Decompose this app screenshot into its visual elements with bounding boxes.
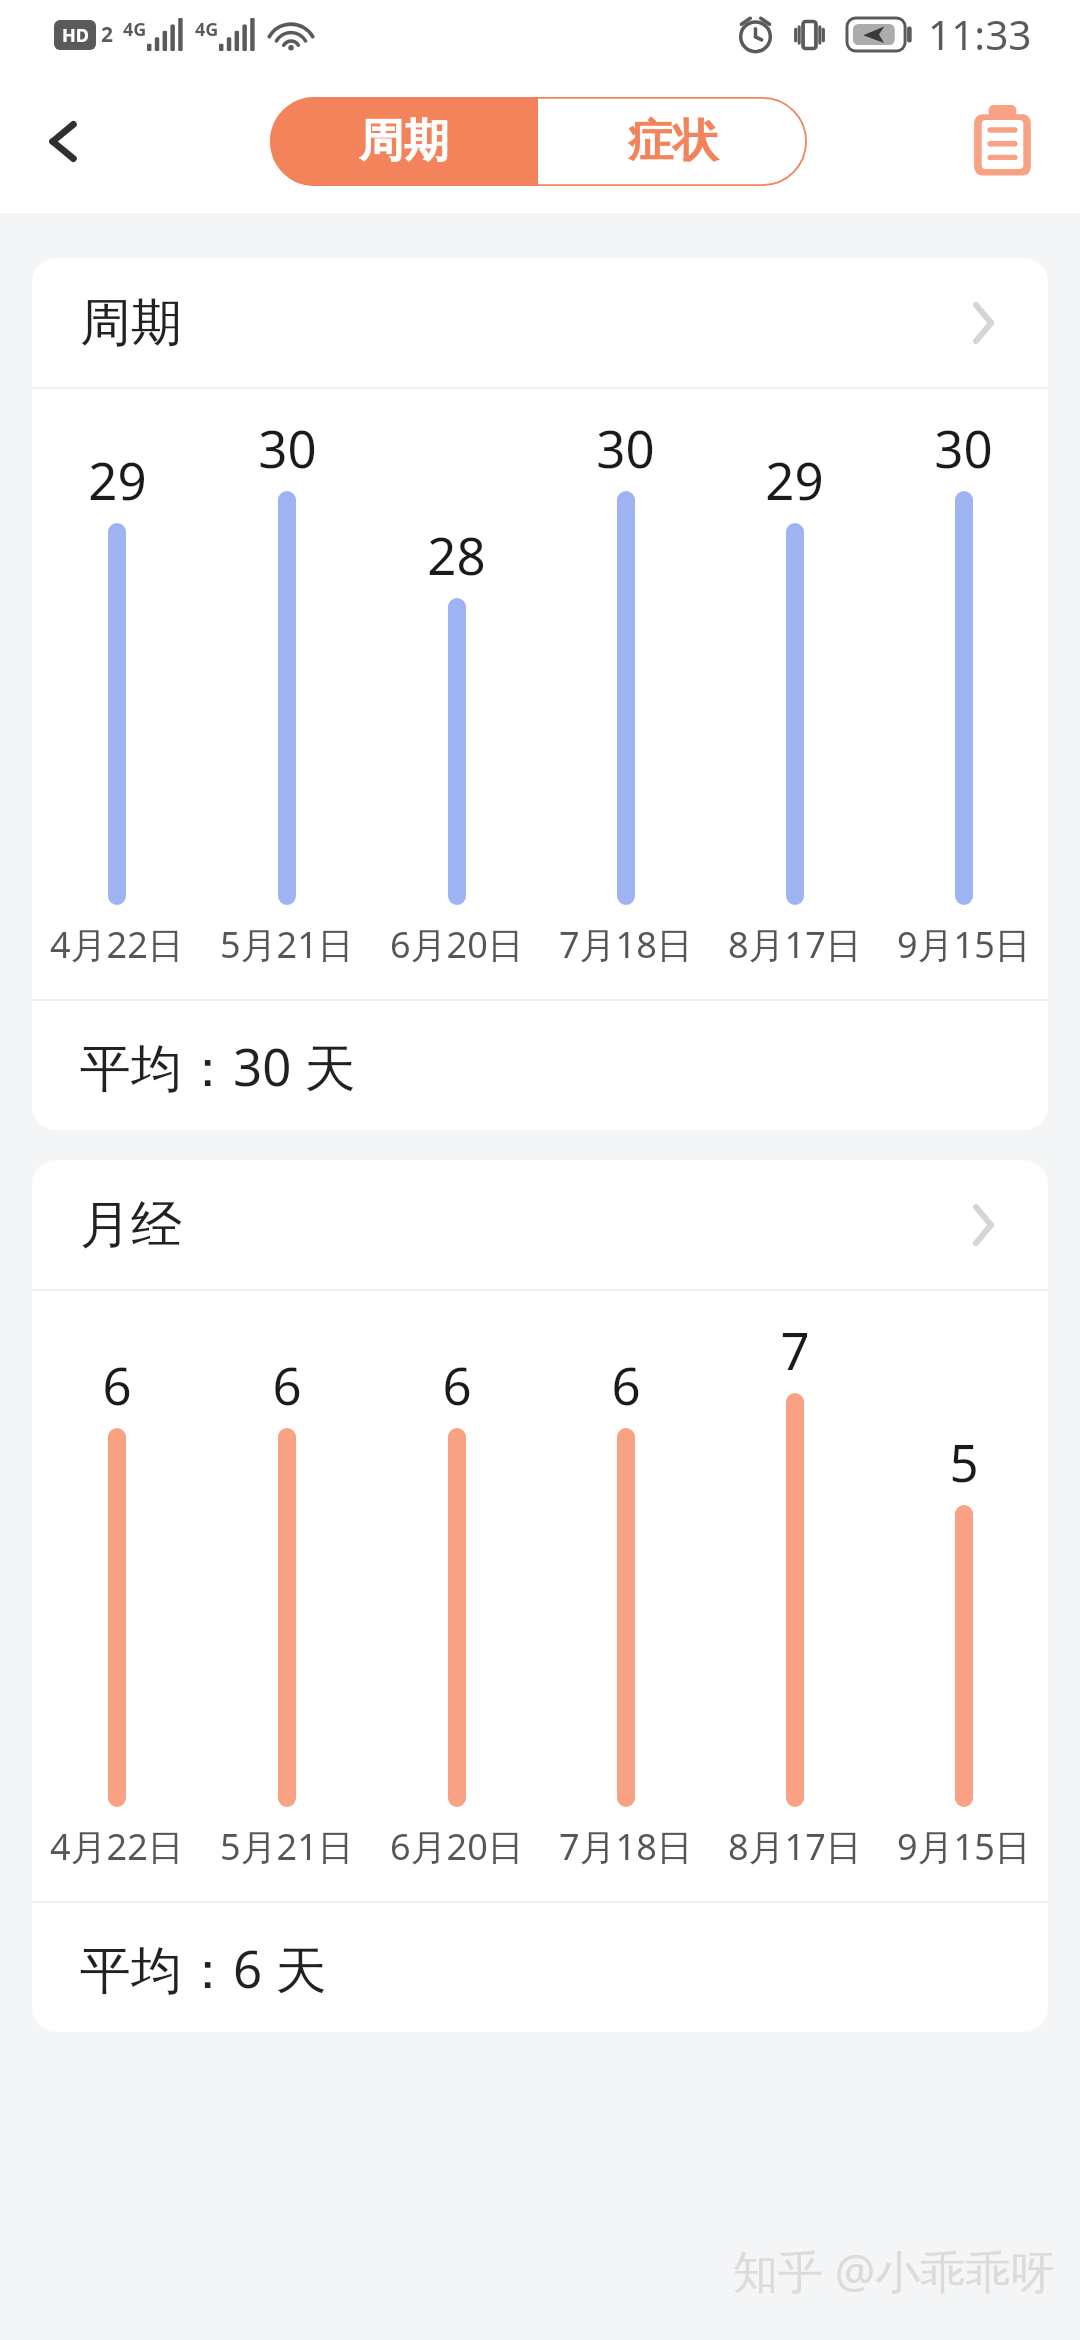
staticText: 周期 xyxy=(80,291,182,355)
staticText: 2 xyxy=(101,20,114,49)
staticText: 周期 xyxy=(359,113,449,170)
staticText: 5 xyxy=(949,1427,979,1496)
staticText: 6 xyxy=(611,1350,641,1419)
staticText: 月经 xyxy=(80,1193,182,1257)
staticText: HD xyxy=(62,23,89,48)
staticText: 7月18日 xyxy=(559,1822,693,1871)
staticText: 4月22日 xyxy=(50,920,184,969)
button[interactable]: 月经 xyxy=(32,1160,1048,2032)
staticText: 5月21日 xyxy=(220,920,354,969)
staticText: 29 xyxy=(88,445,147,514)
staticText: 6月20日 xyxy=(390,1822,524,1871)
staticText: 11:33 xyxy=(928,7,1032,62)
staticText: 4月22日 xyxy=(50,1822,184,1871)
button[interactable]: 症状 xyxy=(538,97,807,186)
staticText: 6 xyxy=(442,1350,472,1419)
staticText: 7 xyxy=(780,1315,810,1384)
staticText: 症状 xyxy=(628,113,718,170)
staticText: 30 xyxy=(258,413,317,482)
staticText: 9月15日 xyxy=(897,920,1031,969)
staticText: 8月17日 xyxy=(728,920,862,969)
staticText: 8月17日 xyxy=(728,1822,862,1871)
button[interactable]: 周期 xyxy=(270,97,538,186)
staticText: 7月18日 xyxy=(559,920,693,969)
button[interactable]: 周期 xyxy=(32,258,1048,1130)
staticText: 6月20日 xyxy=(390,920,524,969)
button[interactable]: Back xyxy=(12,90,114,192)
staticText: 30 xyxy=(934,413,993,482)
staticText: 9月15日 xyxy=(897,1822,1031,1871)
staticText: 28 xyxy=(427,520,486,589)
staticText: 6 xyxy=(102,1350,132,1419)
staticText: 平均：30 天 xyxy=(80,1031,356,1101)
staticText: 5月21日 xyxy=(220,1822,354,1871)
staticText: 平均：6 天 xyxy=(80,1933,327,2003)
staticText: 4G xyxy=(123,17,147,42)
button[interactable]: Records xyxy=(951,90,1053,192)
staticText: 30 xyxy=(596,413,655,482)
staticText: 知乎 @小乖乖呀 xyxy=(733,2240,1056,2301)
staticText: 29 xyxy=(765,445,824,514)
staticText: 6 xyxy=(272,1350,302,1419)
staticText: 4G xyxy=(195,17,219,42)
